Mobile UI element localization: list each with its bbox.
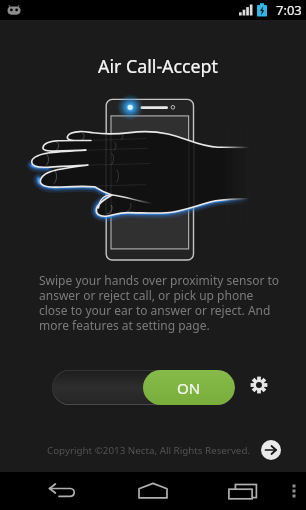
staticText: Air Call-Accept (5, 54, 306, 78)
button[interactable]: Settings (247, 373, 271, 397)
staticText: Swipe your hands over proximity sensor t… (39, 272, 283, 334)
staticText: 7:03 (276, 1, 302, 19)
button[interactable]: More options (282, 472, 306, 510)
button[interactable]: Recent apps (212, 472, 274, 510)
button[interactable]: Home (122, 472, 184, 510)
staticText: Copyright ©2013 Necta, All Rights Reserv… (47, 444, 251, 457)
button[interactable]: ON (52, 370, 235, 405)
staticText: ON (177, 378, 201, 398)
button[interactable]: Next (261, 440, 281, 460)
button[interactable]: Back (32, 472, 94, 510)
